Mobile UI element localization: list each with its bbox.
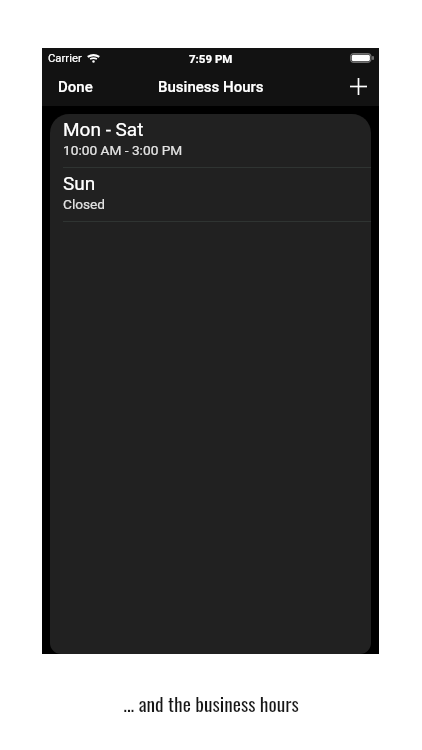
button[interactable]: Done bbox=[42, 68, 107, 106]
staticText: 10:00 AM - 3:00 PM bbox=[63, 142, 183, 158]
button[interactable]: Add bbox=[338, 68, 379, 106]
staticText: Carrier bbox=[48, 52, 82, 65]
staticText: Mon - Sat bbox=[63, 118, 144, 140]
button[interactable]: Sun bbox=[50, 168, 371, 222]
staticText: 7:59 PM bbox=[189, 52, 233, 65]
staticText: Closed bbox=[63, 196, 106, 212]
staticText: ... and the business hours bbox=[0, 689, 422, 718]
button[interactable]: Mon - Sat bbox=[50, 114, 371, 168]
staticText: Business Hours bbox=[158, 78, 264, 96]
staticText: Sun bbox=[63, 172, 96, 194]
staticText: Done bbox=[58, 78, 93, 96]
